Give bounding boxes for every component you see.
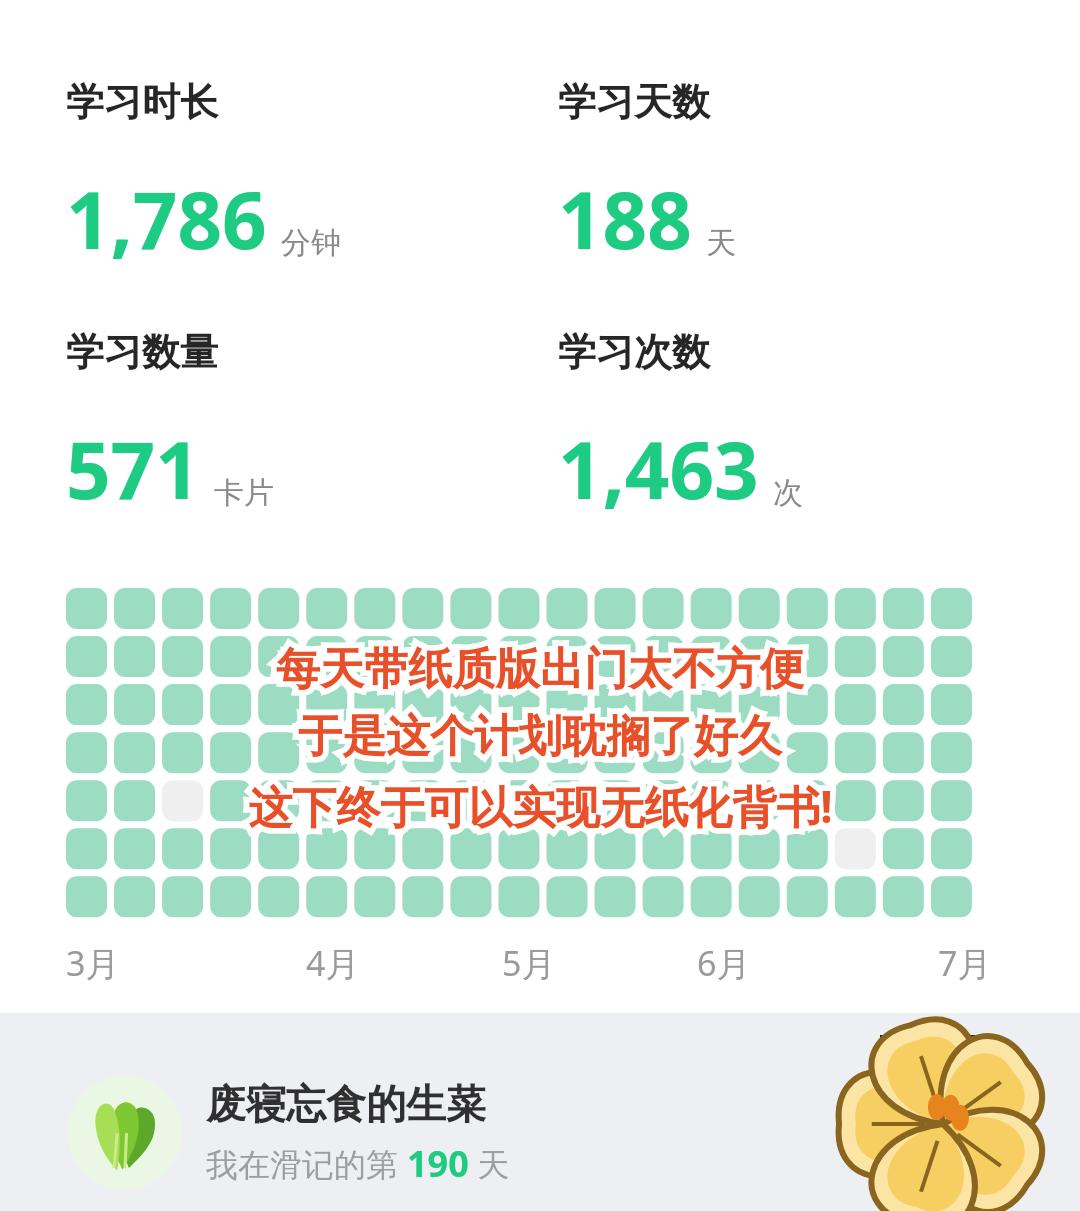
staticText: 每天带纸质版出门太不方便 bbox=[276, 642, 804, 697]
staticText: 5月 bbox=[502, 940, 556, 986]
staticText: 1,463 bbox=[558, 416, 759, 522]
button[interactable]: 废寝忘食的生菜 bbox=[68, 1076, 510, 1190]
staticText: 571 bbox=[66, 416, 200, 522]
staticText: 于是这个计划耽搁了好久 bbox=[298, 709, 782, 764]
staticText: 188 bbox=[558, 166, 692, 272]
staticText: 天 bbox=[706, 224, 736, 262]
staticText: 次 bbox=[773, 474, 803, 512]
staticText: 分钟 bbox=[281, 224, 341, 262]
staticText: 于是这个计划耽搁了好久 bbox=[298, 709, 782, 764]
other: Flower sticker bbox=[818, 1021, 1068, 1211]
staticText: 每天带纸质版出门太不方便 bbox=[276, 642, 804, 697]
other: QR code bbox=[880, 1035, 1000, 1155]
staticText: 卡片 bbox=[214, 474, 274, 512]
staticText: 我在滑记的第 bbox=[206, 1142, 407, 1186]
staticText: 4月 bbox=[306, 940, 360, 986]
staticText: 这下终于可以实现无纸化背书! bbox=[248, 776, 833, 836]
staticText: 1,786 bbox=[66, 166, 267, 272]
staticText: 学习数量 bbox=[66, 328, 218, 376]
staticText: 废寝忘食的生菜 bbox=[206, 1079, 486, 1129]
staticText: 6月 bbox=[697, 940, 751, 986]
staticText: 学习次数 bbox=[558, 328, 710, 376]
staticText: 学习天数 bbox=[558, 78, 710, 126]
staticText: 天 bbox=[469, 1142, 510, 1186]
staticText: 学习时长 bbox=[66, 78, 218, 126]
staticText: 190 bbox=[407, 1139, 469, 1188]
staticText: 3月 bbox=[66, 940, 120, 986]
staticText: 这下终于可以实现无纸化背书! bbox=[248, 776, 833, 836]
staticText: 7月 bbox=[938, 940, 992, 986]
